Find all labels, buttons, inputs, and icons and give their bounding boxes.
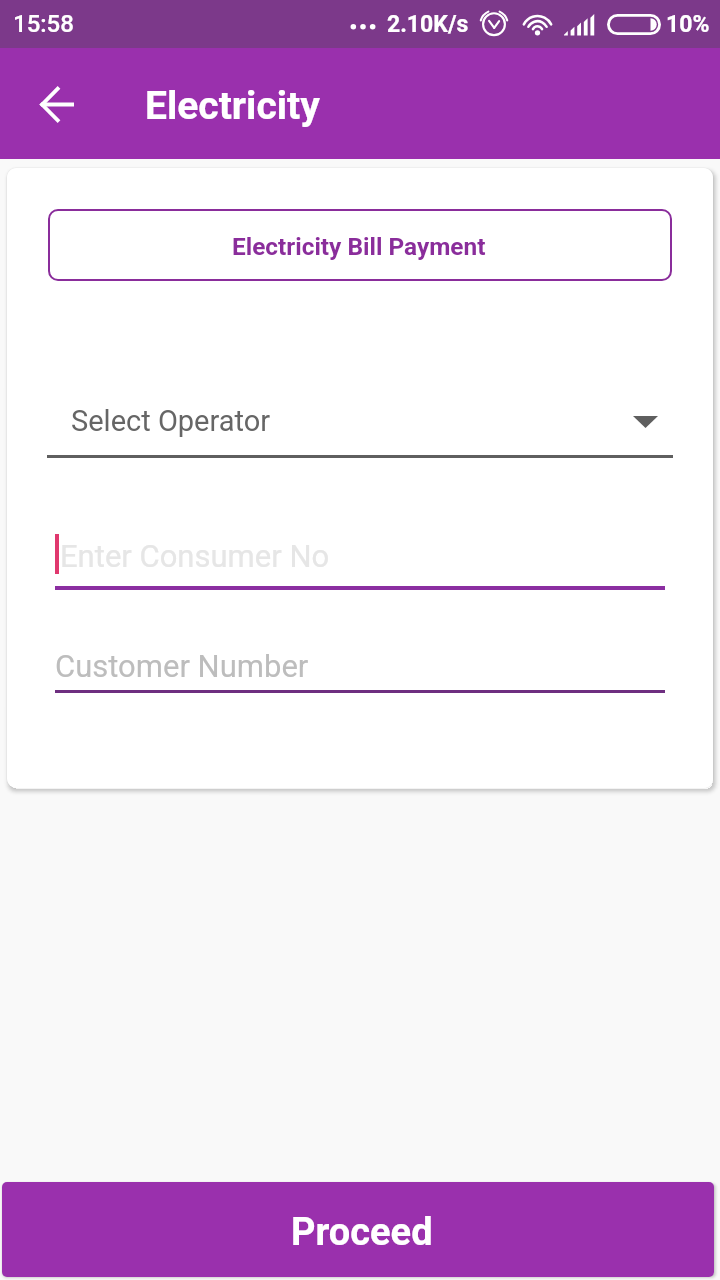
button[interactable]: Select Operator — [47, 395, 673, 458]
button[interactable]: Back — [22, 69, 92, 139]
button[interactable]: Proceed — [2, 1182, 714, 1277]
staticText: Enter Consumer No — [60, 538, 330, 574]
staticText: 10% — [666, 11, 710, 38]
button[interactable]: Electricity Bill Payment — [48, 209, 672, 281]
button[interactable]: Enter Consumer No — [48, 528, 672, 590]
staticText: Electricity — [145, 83, 320, 129]
staticText: Electricity Bill Payment — [232, 232, 486, 261]
staticText: 2.10K/s — [387, 11, 469, 38]
button[interactable]: Customer Number — [48, 648, 672, 696]
staticText: Proceed — [291, 1210, 433, 1255]
staticText: 15:58 — [13, 10, 74, 38]
staticText: Customer Number — [55, 648, 309, 684]
staticText: Select Operator — [71, 404, 271, 438]
